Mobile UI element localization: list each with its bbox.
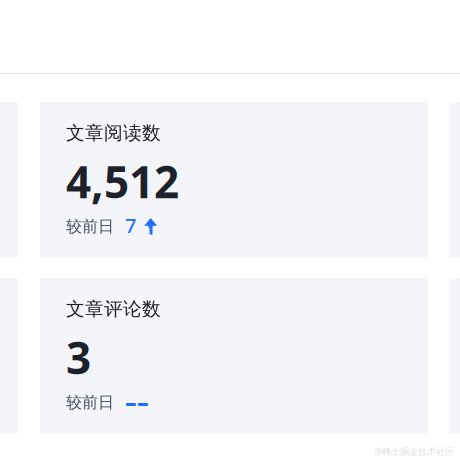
staticText: 3 <box>66 328 91 386</box>
button[interactable]: 文章阅读数 <box>40 102 428 257</box>
staticText: 4,512 <box>66 152 179 210</box>
staticText: @稀土掘金技术社区 <box>374 445 454 457</box>
staticText: 较前日 <box>66 392 114 412</box>
staticText: 文章评论数 <box>66 297 161 320</box>
staticText: 文章阅读数 <box>66 121 161 144</box>
staticText: 7 <box>125 212 136 239</box>
button[interactable]: 文章评论数 <box>40 278 428 433</box>
staticText: 较前日 <box>66 216 114 236</box>
